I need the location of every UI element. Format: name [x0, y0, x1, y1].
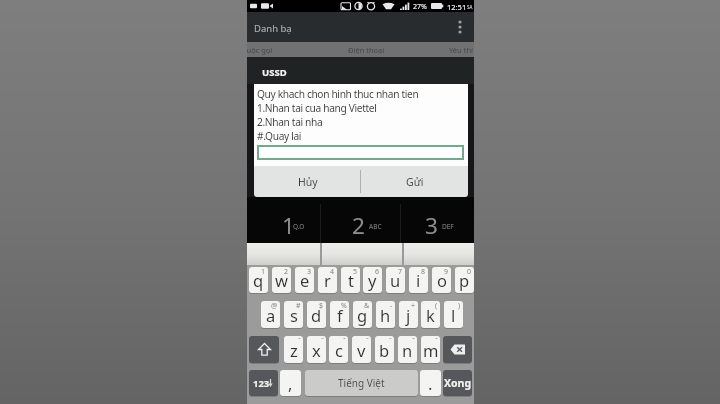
- staticText: k: [426, 304, 435, 326]
- button[interactable]: g: [353, 301, 372, 328]
- button[interactable]: o: [432, 267, 451, 293]
- button[interactable]: h: [376, 301, 395, 328]
- button[interactable]: [443, 336, 472, 363]
- button[interactable]: d: [307, 301, 326, 328]
- button[interactable]: l: [444, 301, 463, 328]
- staticText: 1: [261, 267, 266, 277]
- staticText: ˇ: [412, 336, 415, 346]
- button[interactable]: [249, 336, 279, 363]
- button[interactable]: v: [352, 336, 371, 363]
- staticText: 5: [353, 267, 358, 277]
- staticText: a: [266, 304, 276, 326]
- button[interactable]: p: [455, 267, 474, 293]
- button[interactable]: b: [375, 336, 394, 363]
- staticText: 3: [307, 267, 312, 277]
- button[interactable]: .: [420, 370, 441, 396]
- button[interactable]: cuộc gọi: [247, 42, 303, 58]
- staticText: ˆ: [298, 336, 301, 346]
- button[interactable]: f: [330, 301, 349, 328]
- button[interactable]: 3: [411, 209, 451, 241]
- button[interactable]: w: [272, 267, 291, 293]
- staticText: g: [357, 304, 368, 326]
- staticText: 2: [352, 210, 365, 241]
- button[interactable]: Điện thoại: [348, 42, 408, 58]
- staticText: ˇ: [366, 336, 369, 346]
- button[interactable]: Yêu thí: [449, 42, 474, 58]
- staticText: w: [275, 269, 288, 291]
- button[interactable]: m: [421, 336, 440, 363]
- staticText: 0: [467, 267, 472, 277]
- staticText: z: [290, 339, 298, 361]
- staticText: Gửi: [406, 175, 424, 189]
- staticText: ˆ: [389, 336, 392, 346]
- staticText: j: [406, 304, 411, 326]
- button[interactable]: y: [363, 267, 382, 293]
- staticText: m: [423, 339, 439, 361]
- staticText: Tiếng Việt: [338, 376, 385, 390]
- staticText: 2: [284, 267, 289, 277]
- staticText: @: [271, 301, 278, 311]
- staticText: Danh bạ: [254, 22, 292, 35]
- staticText: ,: [288, 372, 293, 394]
- button[interactable]: Gửi: [361, 166, 468, 197]
- staticText: o: [437, 269, 447, 291]
- staticText: Điện thoại: [348, 45, 385, 55]
- button[interactable]: s: [284, 301, 303, 328]
- staticText: #: [296, 301, 301, 311]
- staticText: e: [300, 269, 310, 291]
- staticText: ˇ: [321, 336, 324, 346]
- button[interactable]: q: [249, 267, 268, 293]
- button[interactable]: z: [284, 336, 303, 363]
- staticText: y: [368, 269, 377, 291]
- staticText: 1: [282, 210, 295, 241]
- button[interactable]: Hủy: [254, 166, 361, 197]
- staticText: Yêu thí: [449, 45, 473, 55]
- staticText: n: [402, 339, 413, 361]
- button[interactable]: r: [318, 267, 337, 293]
- button[interactable]: e: [295, 267, 314, 293]
- button[interactable]: x: [307, 336, 326, 363]
- staticText: SA: [467, 4, 473, 10]
- button[interactable]: k: [421, 301, 440, 328]
- staticText: v: [357, 339, 366, 361]
- staticText: 7: [398, 267, 403, 277]
- staticText: f: [337, 304, 343, 326]
- button[interactable]: Xong: [443, 370, 472, 396]
- staticText: .: [428, 372, 433, 394]
- staticText: p: [459, 269, 470, 291]
- staticText: ABC: [369, 222, 382, 231]
- staticText: -: [390, 301, 393, 311]
- staticText: x: [312, 339, 321, 361]
- button[interactable]: ,: [280, 370, 301, 396]
- staticText: c: [335, 339, 343, 361]
- staticText: 3: [425, 210, 438, 241]
- staticText: Hủy: [298, 175, 318, 189]
- button[interactable]: Tiếng Việt: [305, 370, 418, 396]
- button[interactable]: [450, 12, 470, 42]
- staticText: $: [319, 301, 324, 311]
- staticText: cuộc gọi: [247, 45, 273, 55]
- staticText: ˆ: [343, 336, 346, 346]
- button[interactable]: 123: [249, 370, 278, 396]
- staticText: 12:51: [447, 2, 467, 12]
- button[interactable]: j: [399, 301, 418, 328]
- button[interactable]: 1: [268, 209, 308, 241]
- staticText: 9: [444, 267, 449, 277]
- button[interactable]: c: [329, 336, 348, 363]
- staticText: 8: [421, 267, 426, 277]
- staticText: 123: [253, 377, 270, 390]
- button[interactable]: n: [398, 336, 417, 363]
- staticText: %: [341, 301, 347, 311]
- staticText: Quy khach chon hinh thuc nhan tien 1.Nha…: [257, 87, 419, 143]
- button[interactable]: u: [386, 267, 405, 293]
- button[interactable]: [257, 145, 464, 160]
- button[interactable]: a: [261, 301, 280, 328]
- staticText: s: [290, 304, 298, 326]
- button[interactable]: i: [409, 267, 428, 293]
- button[interactable]: t: [341, 267, 360, 293]
- staticText: 4: [330, 267, 335, 277]
- staticText: Xong: [444, 376, 472, 390]
- button[interactable]: 2: [338, 209, 378, 241]
- staticText: t: [348, 269, 354, 291]
- staticText: q: [253, 269, 264, 291]
